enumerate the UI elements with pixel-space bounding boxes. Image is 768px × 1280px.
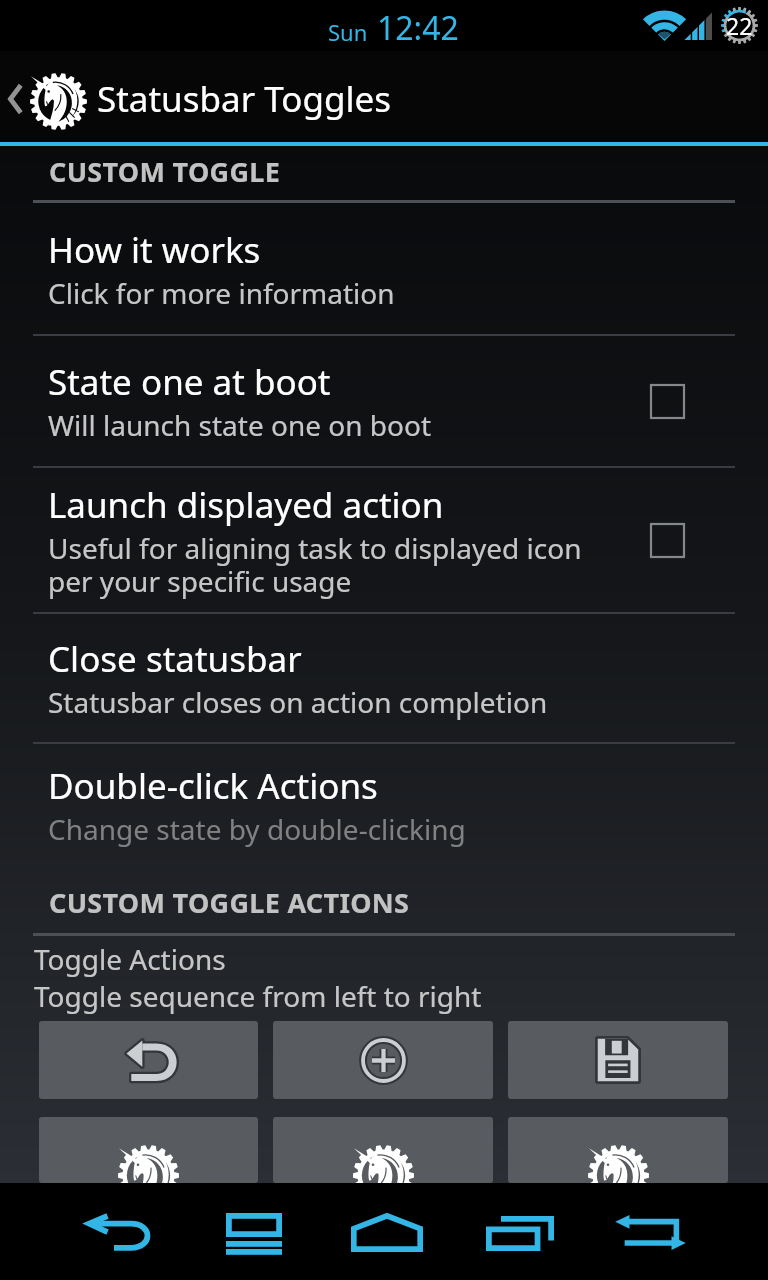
staticText: Sun <box>328 17 368 47</box>
button[interactable]: Save <box>508 1021 728 1099</box>
button[interactable]: Toggle <box>39 1117 258 1183</box>
staticText: Statusbar closes on action completion <box>48 683 548 721</box>
staticText: 12:42 <box>377 6 459 50</box>
staticText: Toggle Actions Toggle sequence from left… <box>34 940 482 1015</box>
staticText: Change state by double-clicking <box>48 810 466 848</box>
button[interactable]: Launch displayed action <box>0 468 768 612</box>
staticText: CUSTOM TOGGLE ACTIONS <box>49 884 410 921</box>
staticText: Launch displayed action <box>48 481 444 529</box>
button[interactable]: Double-click Actions <box>0 744 768 866</box>
button[interactable]: Back <box>53 1183 187 1280</box>
button[interactable]: Navigate up <box>0 51 87 146</box>
staticText: 22 <box>726 10 753 41</box>
button[interactable]: Keyboard <box>187 1183 320 1280</box>
staticText: Useful for aligning task to displayed ic… <box>48 529 582 600</box>
staticText: How it works <box>48 226 261 274</box>
staticText: Close statusbar <box>48 635 302 683</box>
staticText: Statusbar Toggles <box>97 75 392 123</box>
button[interactable]: Toggle <box>508 1117 728 1183</box>
staticText: State one at boot <box>48 358 331 406</box>
button[interactable]: How it works <box>0 203 768 334</box>
button[interactable]: Close statusbar <box>0 614 768 742</box>
staticText: Click for more information <box>48 274 395 312</box>
button[interactable]: Recent apps <box>453 1183 587 1280</box>
button[interactable]: Toggle <box>273 1117 493 1183</box>
button[interactable]: Undo <box>39 1021 258 1099</box>
button[interactable]: Add <box>273 1021 493 1099</box>
button[interactable]: Rotate <box>587 1183 713 1280</box>
staticText: CUSTOM TOGGLE <box>49 153 281 190</box>
button[interactable]: Home <box>320 1183 453 1280</box>
staticText: Will launch state one on boot <box>48 406 432 444</box>
button[interactable]: State one at boot <box>0 336 768 466</box>
staticText: Double-click Actions <box>48 762 378 810</box>
